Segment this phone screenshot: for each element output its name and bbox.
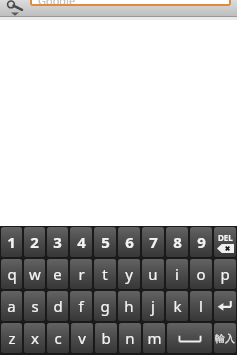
button[interactable]: u [142,259,164,289]
button[interactable]: p [214,259,236,289]
button[interactable]: 2 [24,227,45,257]
staticText: d [53,296,63,316]
button[interactable]: g [94,291,116,321]
button[interactable]: 5 [94,227,116,257]
staticText: n [125,328,135,348]
staticText: 4 [77,232,86,252]
button[interactable]: 7 [142,227,164,257]
staticText: z [8,328,16,348]
button[interactable]: t [94,259,116,289]
staticText: q [7,264,17,284]
button[interactable]: l [190,291,212,321]
button[interactable]: s [24,291,45,321]
button[interactable]: a [1,291,22,321]
button[interactable]: Search type [0,0,30,17]
staticText: e [53,264,62,284]
staticText: 8 [173,232,182,252]
button[interactable]: m [143,323,165,353]
button[interactable]: Space [167,323,212,353]
staticText: t [102,264,108,284]
staticText: b [101,328,111,348]
button[interactable]: 4 [70,227,92,257]
staticText: 輸入 [215,332,235,345]
staticText: Google [38,0,76,4]
button[interactable]: e [47,259,68,289]
button[interactable]: 1 [1,227,22,257]
staticText: w [29,264,41,284]
button[interactable]: i [166,259,188,289]
staticText: m [147,328,162,348]
staticText: p [220,264,230,284]
button[interactable]: Input method [214,323,236,353]
button[interactable]: h [118,291,140,321]
button[interactable]: j [142,291,164,321]
button[interactable]: 3 [47,227,68,257]
button[interactable]: 8 [166,227,188,257]
staticText: v [78,328,86,348]
button[interactable]: c [47,323,69,353]
staticText: 5 [101,232,110,252]
staticText: y [125,264,133,284]
button[interactable]: w [24,259,45,289]
button[interactable]: n [119,323,141,353]
button[interactable]: 9 [190,227,212,257]
button[interactable]: q [1,259,22,289]
staticText: 1 [7,232,16,252]
button[interactable]: d [47,291,68,321]
staticText: l [199,296,203,316]
button[interactable]: Google [32,0,229,4]
button[interactable]: 6 [118,227,140,257]
button[interactable]: b [95,323,117,353]
button[interactable]: k [166,291,188,321]
staticText: 6 [125,232,134,252]
button[interactable]: r [70,259,92,289]
staticText: f [78,296,84,316]
button[interactable]: Enter [214,291,236,321]
staticText: c [54,328,62,348]
button[interactable]: z [1,323,22,353]
staticText: h [124,296,134,316]
staticText: a [7,296,16,316]
button[interactable]: o [190,259,212,289]
button[interactable]: Delete [214,227,236,257]
button[interactable]: f [70,291,92,321]
staticText: u [148,264,158,284]
staticText: 7 [149,232,158,252]
button[interactable]: y [118,259,140,289]
button[interactable]: v [71,323,93,353]
staticText: j [151,296,155,316]
staticText: 2 [30,232,39,252]
staticText: DEL [218,232,233,243]
staticText: i [175,264,179,284]
staticText: 9 [197,232,206,252]
staticText: 3 [53,232,62,252]
staticText: g [100,296,110,316]
staticText: k [173,296,182,316]
staticText: x [31,328,39,348]
staticText: o [196,264,206,284]
staticText: s [31,296,39,316]
staticText: r [78,264,85,284]
button[interactable]: x [24,323,45,353]
